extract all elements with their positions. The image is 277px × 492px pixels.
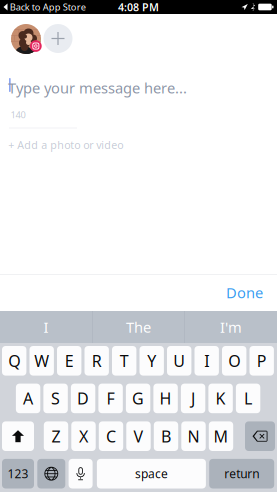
- button[interactable]: P: [249, 346, 274, 376]
- staticText: B: [161, 426, 171, 447]
- staticText: R: [92, 350, 102, 371]
- staticText: M: [213, 426, 228, 447]
- staticText: I: [204, 350, 209, 371]
- staticText: return: [224, 466, 259, 482]
- button[interactable]: B: [154, 421, 178, 451]
- staticText: T: [120, 350, 129, 371]
- button[interactable]: Back to App Store: [0, 0, 90, 14]
- staticText: U: [173, 350, 185, 371]
- button[interactable]: N: [181, 421, 206, 451]
- staticText: 123: [7, 466, 28, 482]
- staticText: I: [43, 317, 48, 337]
- button[interactable]: Y: [139, 346, 164, 376]
- button[interactable]: U: [167, 346, 191, 376]
- staticText: K: [216, 388, 226, 409]
- button[interactable]: E: [57, 346, 81, 376]
- button[interactable]: I'm: [185, 311, 277, 343]
- staticText: I'm: [220, 317, 242, 337]
- button[interactable]: H: [153, 384, 178, 413]
- button[interactable]: I: [194, 346, 219, 376]
- button[interactable]: G: [126, 384, 150, 413]
- staticText: N: [187, 426, 199, 447]
- staticText: W: [34, 350, 49, 371]
- staticText: Q: [8, 350, 20, 371]
- staticText: L: [244, 388, 252, 409]
- button[interactable]: return: [209, 459, 274, 488]
- button[interactable]: S: [43, 384, 68, 413]
- staticText: O: [228, 350, 240, 371]
- button[interactable]: W: [29, 346, 54, 376]
- staticText: + Add a photo or video: [8, 138, 123, 152]
- button[interactable]: Q: [2, 346, 26, 376]
- button[interactable]: Numbers: [2, 459, 34, 488]
- button[interactable]: F: [98, 384, 123, 413]
- button[interactable]: T: [112, 346, 136, 376]
- button[interactable]: K: [208, 384, 233, 413]
- staticText: Type your message here...: [8, 78, 187, 97]
- staticText: F: [107, 388, 115, 409]
- button[interactable]: The: [93, 311, 184, 343]
- staticText: 140: [10, 108, 25, 121]
- staticText: V: [133, 426, 143, 447]
- staticText: Z: [51, 426, 60, 447]
- staticText: 4:08 PM: [118, 0, 159, 14]
- button[interactable]: I: [0, 311, 92, 343]
- button[interactable]: X: [71, 421, 96, 451]
- staticText: C: [106, 426, 116, 447]
- staticText: Back to App Store: [10, 1, 86, 13]
- button[interactable]: Done: [214, 274, 277, 310]
- staticText: The: [126, 317, 151, 337]
- staticText: G: [132, 388, 144, 409]
- button[interactable]: V: [126, 421, 151, 451]
- button[interactable]: D: [71, 384, 95, 413]
- staticText: E: [65, 350, 74, 371]
- staticText: X: [79, 426, 88, 447]
- button[interactable]: C: [99, 421, 123, 451]
- staticText: J: [191, 388, 195, 409]
- button[interactable]: A: [16, 384, 40, 413]
- button[interactable]: M: [209, 421, 233, 451]
- staticText: Done: [226, 283, 263, 302]
- button[interactable]: Delete: [245, 421, 275, 451]
- button[interactable]: R: [84, 346, 109, 376]
- staticText: S: [51, 388, 60, 409]
- button[interactable]: O: [222, 346, 246, 376]
- button[interactable]: Add account: [43, 24, 72, 53]
- staticText: D: [77, 388, 89, 409]
- staticText: H: [160, 388, 172, 409]
- staticText: A: [23, 388, 33, 409]
- button[interactable]: J: [181, 384, 205, 413]
- button[interactable]: + Add a photo or video: [8, 134, 131, 156]
- staticText: P: [257, 350, 267, 371]
- button[interactable]: L: [236, 384, 260, 413]
- button[interactable]: Next keyboard: [37, 459, 65, 488]
- staticText: Y: [147, 350, 156, 371]
- button[interactable]: Shift: [2, 421, 34, 451]
- staticText: space: [135, 466, 168, 482]
- button[interactable]: Dictation: [69, 459, 93, 488]
- button[interactable]: Z: [44, 421, 68, 451]
- button[interactable]: space: [97, 459, 206, 488]
